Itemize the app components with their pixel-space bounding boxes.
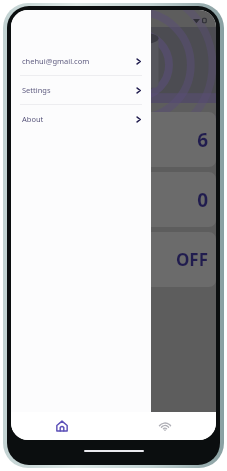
button[interactable]: About (11, 105, 151, 133)
button[interactable]: chehui@gmail.com (11, 47, 151, 75)
staticText: 6 (197, 127, 208, 153)
button[interactable]: 6 (129, 112, 216, 167)
button[interactable]: 0 (129, 172, 216, 227)
staticText: chehui@gmail.com (22, 56, 90, 66)
staticText: 0 (197, 187, 208, 213)
button[interactable]: Home (11, 412, 113, 440)
staticText: OFF (175, 248, 208, 271)
button[interactable]: OFF (129, 232, 216, 287)
staticText: Settings (22, 85, 51, 95)
button[interactable]: Settings (11, 76, 151, 104)
button[interactable]: Wi-Fi (113, 412, 216, 440)
staticText: About (22, 114, 44, 124)
